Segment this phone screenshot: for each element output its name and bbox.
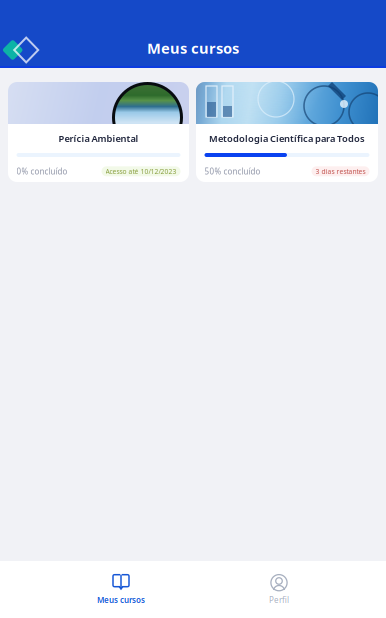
staticText: 50% concluído xyxy=(204,166,260,177)
button[interactable]: Perícia Ambiental xyxy=(8,82,189,182)
staticText: Acesso até 10/12/2023 xyxy=(105,167,176,176)
staticText: 3 dias restantes xyxy=(315,167,365,176)
staticText: Perfil xyxy=(269,595,289,605)
staticText: Meus cursos xyxy=(97,595,145,605)
staticText: Metodologia Científica para Todos xyxy=(209,132,365,145)
staticText: 0% concluído xyxy=(16,166,67,177)
button[interactable]: Meus cursos xyxy=(86,561,156,618)
button[interactable]: Perfil xyxy=(244,561,314,618)
staticText: Meus cursos xyxy=(147,38,239,58)
button[interactable]: Home xyxy=(0,33,45,63)
staticText: Perícia Ambiental xyxy=(58,132,138,145)
button[interactable]: Metodologia Científica para Todos xyxy=(196,82,378,182)
